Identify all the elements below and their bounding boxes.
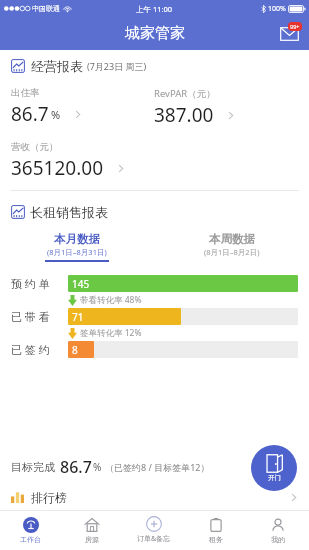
button[interactable]: 排行榜 <box>11 484 298 510</box>
staticText: 365120.00 <box>11 155 104 181</box>
staticText: 本周数据 <box>209 232 255 246</box>
staticText: 已 带 看 <box>11 309 64 324</box>
staticText: 签单转化率 12% <box>80 327 142 339</box>
staticText: 8 <box>72 343 78 357</box>
button[interactable]: 已 签 约 <box>11 341 298 358</box>
staticText: 排行榜 <box>31 490 67 505</box>
staticText: 目标完成 <box>11 460 55 474</box>
staticText: 开门 <box>268 474 281 482</box>
staticText: 145 <box>72 277 90 291</box>
staticText: 长租销售报表 <box>30 204 108 220</box>
staticText: （已签约8 / 目标签单12） <box>105 461 210 473</box>
staticText: 100% <box>268 4 286 14</box>
staticText: 本月数据 <box>54 232 100 246</box>
staticText: 99+ <box>290 23 300 30</box>
staticText: 房源 <box>85 535 99 544</box>
staticText: 出住率 <box>11 87 40 99</box>
button[interactable]: 营收（元） <box>11 141 154 181</box>
staticText: 租务 <box>209 535 223 544</box>
button[interactable]: 工作台 <box>0 510 61 550</box>
staticText: 上午 11:00 <box>136 4 173 14</box>
staticText: 预 约 单 <box>11 276 64 291</box>
button[interactable]: 租务 <box>185 510 247 550</box>
staticText: 工作台 <box>20 535 41 544</box>
staticText: % <box>93 460 102 474</box>
staticText: 营收（元） <box>11 141 59 153</box>
staticText: 387.00 <box>154 102 214 128</box>
button[interactable]: 本月数据 <box>0 232 154 262</box>
button[interactable]: RevPAR（元） <box>154 87 298 128</box>
button[interactable]: 房源 <box>61 510 123 550</box>
staticText: (8月1日–8月2日) <box>204 247 260 257</box>
staticText: (7月23日 周三) <box>87 60 147 72</box>
button[interactable]: 消息 <box>276 21 302 47</box>
staticText: 已 签 约 <box>11 342 64 357</box>
button[interactable]: 开门 <box>251 445 297 491</box>
staticText: 86.7 <box>60 456 92 478</box>
staticText: (8月1日–8月31日) <box>47 247 107 257</box>
staticText: % <box>51 107 61 122</box>
button[interactable]: 订单&备忘 <box>123 510 185 550</box>
staticText: 经营报表 <box>31 58 83 74</box>
staticText: 中国联通 <box>32 4 60 13</box>
staticText: 我的 <box>271 535 285 544</box>
staticText: 带看转化率 48% <box>80 294 142 306</box>
button[interactable]: 我的 <box>247 510 309 550</box>
staticText: 71 <box>72 310 84 324</box>
staticText: RevPAR（元） <box>154 87 216 100</box>
staticText: 86.7 <box>11 101 49 127</box>
button[interactable]: 已 带 看 <box>11 308 298 325</box>
staticText: 城家管家 <box>125 24 185 43</box>
button[interactable]: 本周数据 <box>154 232 309 262</box>
button[interactable]: 预 约 单 <box>11 275 298 292</box>
button[interactable]: 出住率 <box>11 87 154 127</box>
staticText: 订单&备忘 <box>137 534 171 544</box>
